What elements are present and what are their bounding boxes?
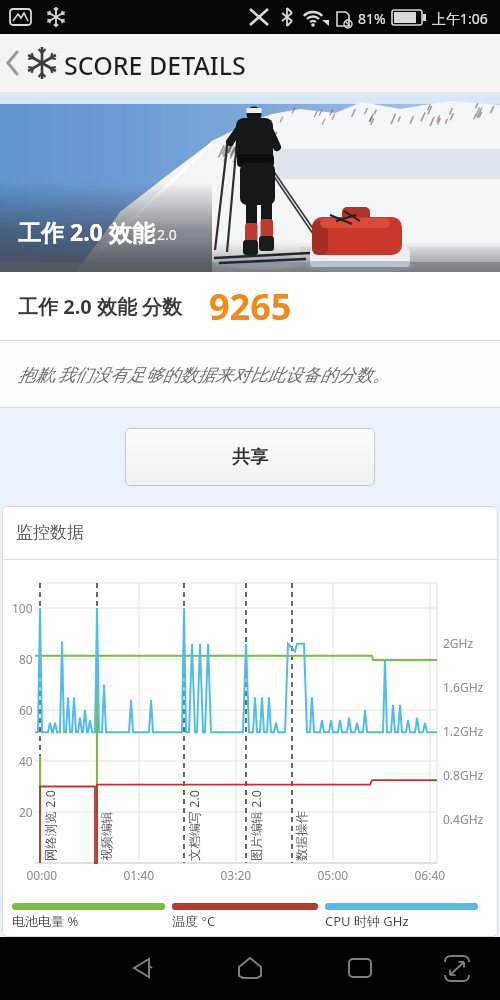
staticText: 工作 2.0 效能 分数 xyxy=(18,293,183,320)
staticText: 共享 xyxy=(232,446,268,469)
staticText: 9265 xyxy=(209,282,292,331)
button[interactable] xyxy=(0,34,26,92)
staticText: 上午1:06 xyxy=(432,9,488,28)
button[interactable] xyxy=(435,947,479,991)
staticText: 抱歉,我们没有足够的数据来对比此设备的分数。 xyxy=(18,362,390,386)
staticText: 工作 2.0 效能 xyxy=(18,216,155,247)
staticText: 监控数据 xyxy=(16,522,84,543)
staticText: 2.0 xyxy=(157,225,177,244)
staticText: 81% xyxy=(358,9,386,28)
button[interactable] xyxy=(120,947,164,991)
button[interactable] xyxy=(338,947,382,991)
button[interactable]: 共享 xyxy=(125,428,375,486)
staticText: SCORE DETAILS xyxy=(64,48,246,82)
button[interactable] xyxy=(228,947,272,991)
